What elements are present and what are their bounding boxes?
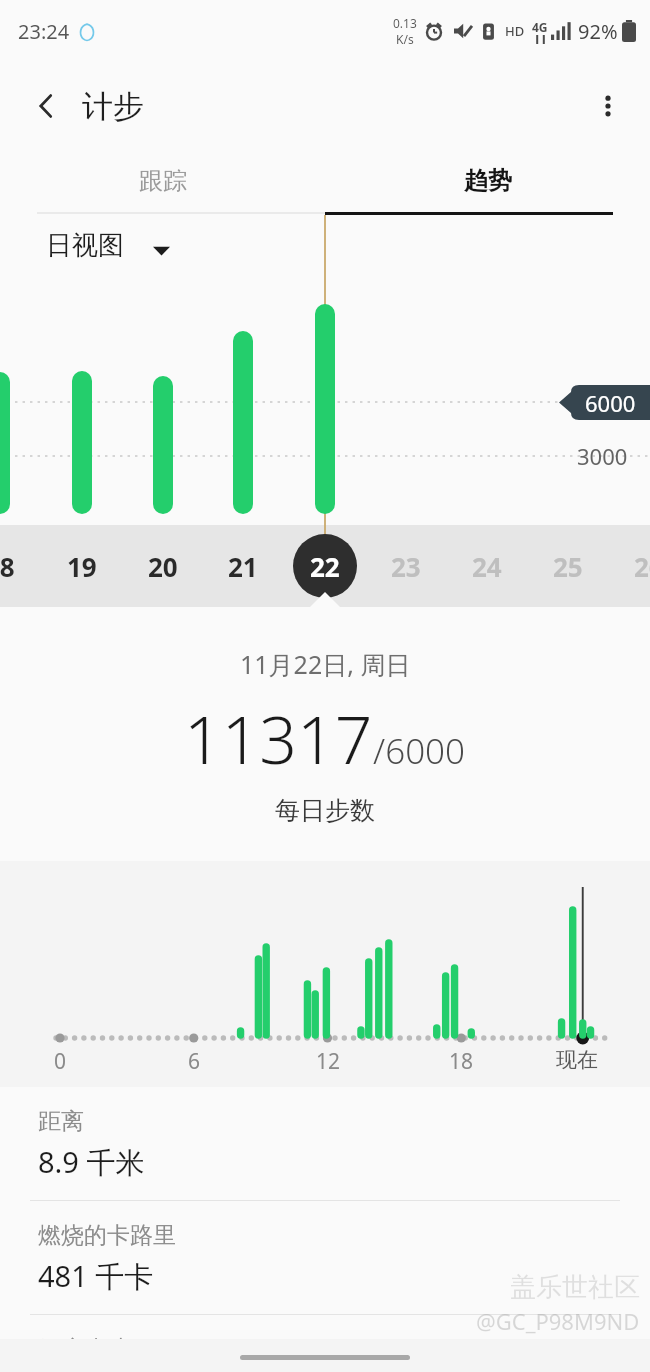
staticText: /6000 [373, 727, 466, 775]
button[interactable]: 21 [211, 534, 275, 598]
staticText: 日视图 [46, 229, 124, 262]
button[interactable]: 19 [50, 534, 114, 598]
staticText: 趋势 [464, 166, 512, 196]
staticText: 11317 [184, 693, 373, 783]
staticText: HD [505, 22, 525, 40]
button[interactable]: 距离 [0, 1087, 650, 1201]
staticText: 18 [0, 549, 15, 584]
button[interactable]: 18 [0, 534, 32, 598]
staticText: 24 [472, 549, 502, 584]
button[interactable]: More options [584, 82, 632, 130]
button[interactable]: 健康步速 [0, 1315, 650, 1364]
staticText: 燃烧的卡路里 [38, 1221, 176, 1250]
staticText: 健康步速 [38, 1335, 130, 1364]
staticText: 21 [228, 549, 258, 584]
staticText: 25 [553, 549, 583, 584]
staticText: 每日步数 [275, 795, 375, 826]
staticText: 6000 [585, 388, 636, 418]
staticText: 20 [148, 549, 178, 584]
button[interactable]: 趋势 [325, 150, 650, 212]
button[interactable]: Back [22, 82, 70, 130]
button[interactable]: 23 [374, 534, 438, 598]
button[interactable]: Change view period [146, 235, 176, 265]
staticText: 23 [391, 549, 421, 584]
staticText: 现在 [545, 1047, 609, 1073]
staticText: 盖乐世社区 [510, 1271, 640, 1304]
staticText: 481 千卡 [38, 1256, 154, 1296]
staticText: 23:24 [18, 18, 70, 45]
staticText: 19 [67, 549, 97, 584]
staticText: 0.13 [393, 15, 417, 31]
staticText: 计步 [82, 87, 144, 126]
staticText: 跟踪 [139, 166, 187, 196]
staticText: 92% [578, 18, 618, 45]
button[interactable]: 20 [131, 534, 195, 598]
staticText: 距离 [38, 1107, 84, 1136]
button[interactable]: 燃烧的卡路里 [0, 1201, 650, 1315]
button[interactable]: 跟踪 [0, 150, 325, 212]
staticText: 11月22日, 周日 [240, 647, 411, 681]
button[interactable]: 24 [455, 534, 519, 598]
button[interactable]: 26 [617, 534, 650, 598]
button[interactable]: 22 [293, 534, 357, 598]
staticText: 8.9 千米 [38, 1142, 145, 1182]
staticText: 6 [172, 1047, 216, 1076]
staticText: 4G [532, 19, 548, 35]
staticText: 0 [38, 1047, 82, 1076]
staticText: @GC_P98M9ND [476, 1306, 640, 1336]
button[interactable]: 25 [536, 534, 600, 598]
staticText: 26 [634, 549, 650, 584]
staticText: 3000 [577, 441, 628, 471]
staticText: 22 [310, 549, 340, 584]
staticText: 18 [439, 1047, 483, 1076]
staticText: K/s [396, 31, 414, 47]
staticText: 12 [306, 1047, 350, 1076]
